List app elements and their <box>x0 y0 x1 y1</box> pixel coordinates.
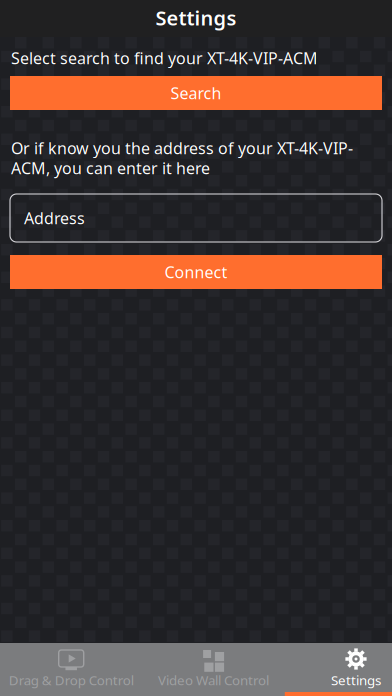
button[interactable]: Drag & Drop Control <box>0 643 142 696</box>
staticText: Connect <box>164 261 227 283</box>
staticText: Settings <box>155 4 236 31</box>
button[interactable]: Video Wall Control <box>142 643 285 696</box>
staticText: Search <box>170 82 221 104</box>
staticText: Address <box>24 207 85 229</box>
button[interactable]: Settings <box>285 643 392 696</box>
staticText: Video Wall Control <box>158 671 269 689</box>
staticText: Select search to find your XT-4K-VIP-ACM <box>11 47 318 69</box>
button[interactable]: Search <box>10 76 382 110</box>
staticText: Or if know you the address of your XT-4K… <box>11 137 353 159</box>
button[interactable]: Connect <box>10 255 382 289</box>
staticText: ACM, you can enter it here <box>11 157 210 179</box>
staticText: Drag & Drop Control <box>9 671 134 689</box>
staticText: Settings <box>331 671 381 689</box>
